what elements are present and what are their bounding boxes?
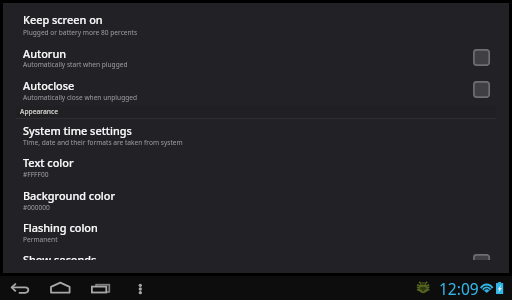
button[interactable]: Text color xyxy=(3,152,509,185)
button[interactable]: More options xyxy=(126,276,156,300)
staticText: Text color xyxy=(23,155,74,170)
staticText: Flashing colon xyxy=(23,220,98,235)
button[interactable]: Autorun xyxy=(3,37,509,69)
staticText: Time, date and their formats are taken f… xyxy=(23,138,183,147)
button[interactable]: Keep screen on xyxy=(3,3,509,37)
staticText: #FFFF00 xyxy=(23,170,49,179)
staticText: 12:09 xyxy=(439,278,479,299)
staticText: Show seconds xyxy=(23,252,97,260)
staticText: Permanent xyxy=(23,235,58,244)
button[interactable]: Autoclose xyxy=(3,69,509,101)
staticText: Background color xyxy=(23,188,116,203)
button[interactable]: Back xyxy=(2,276,40,300)
button[interactable]: System time settings xyxy=(3,120,509,152)
staticText: Automatically start when plugged xyxy=(23,60,128,69)
staticText: Autoclose xyxy=(23,78,75,93)
staticText: Appearance xyxy=(20,107,59,116)
button[interactable]: Background color xyxy=(3,185,509,218)
staticText: Automatically close when unplugged xyxy=(23,93,138,102)
button[interactable]: Home xyxy=(42,276,80,300)
staticText: System time settings xyxy=(23,123,132,138)
staticText: Keep screen on xyxy=(23,12,103,27)
button[interactable]: Show seconds xyxy=(3,250,509,260)
button[interactable]: Flashing colon xyxy=(3,218,509,250)
button[interactable]: Recent apps xyxy=(84,276,122,300)
staticText: Plugged or battery more 80 percents xyxy=(23,28,138,37)
staticText: Autorun xyxy=(23,46,67,61)
staticText: #000000 xyxy=(23,203,50,212)
